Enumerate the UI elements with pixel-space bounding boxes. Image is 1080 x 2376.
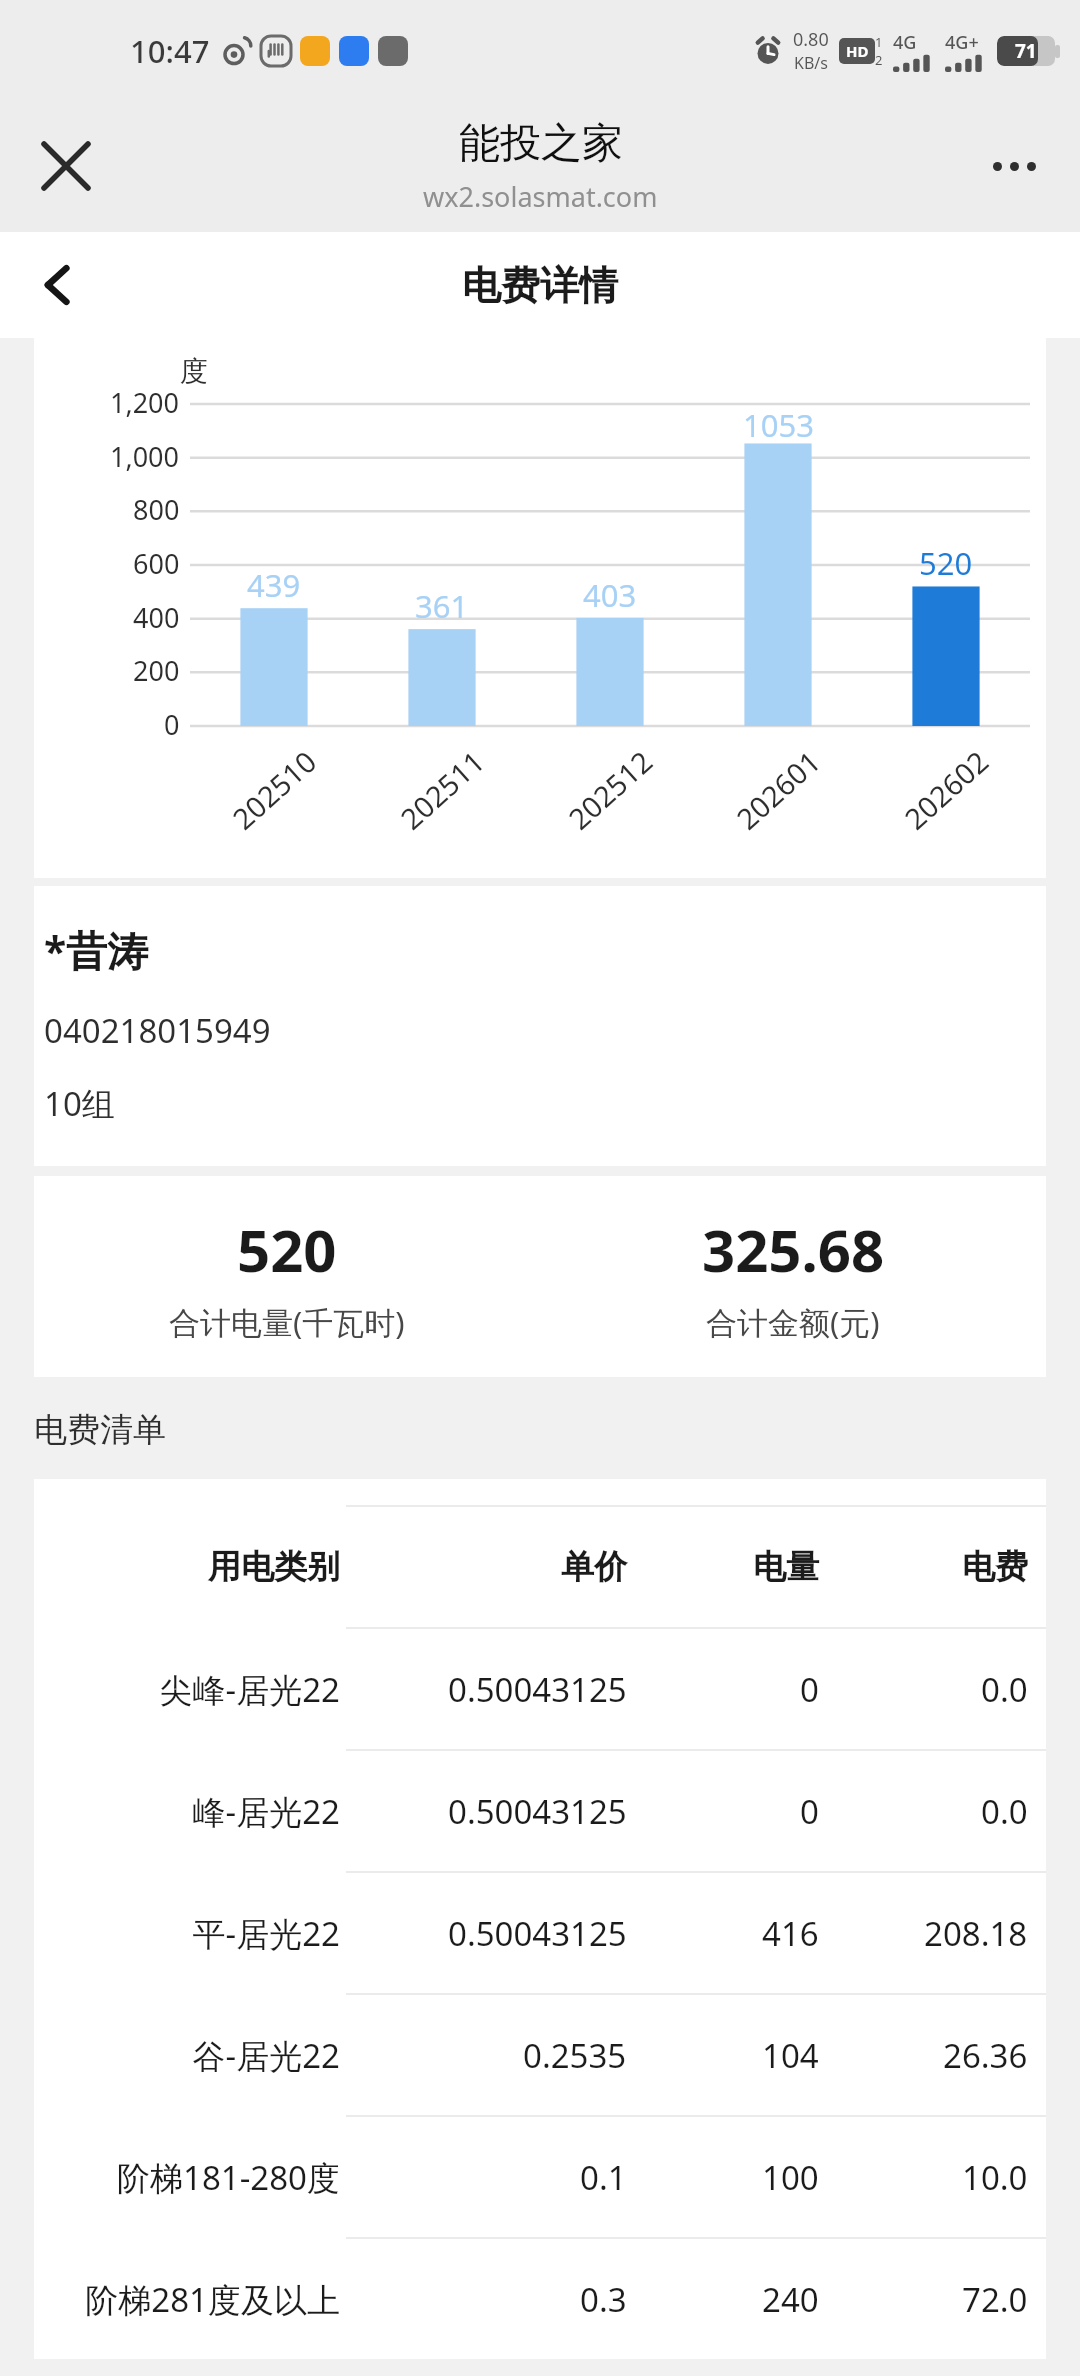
staticText: 71 [1015, 38, 1037, 64]
staticText: 208.18 [924, 1911, 1028, 1956]
staticText: 平-居光22 [192, 1911, 340, 1956]
staticText: 104 [762, 2033, 819, 2078]
staticText: 26.36 [943, 2033, 1028, 2078]
staticText: 361 [415, 585, 469, 627]
staticText: KB/s [794, 52, 828, 74]
button[interactable]: 阶梯181-280度 [34, 2117, 1046, 2237]
staticText: 电费详情 [462, 261, 618, 310]
staticText: 439 [247, 564, 301, 606]
staticText: 100 [762, 2155, 819, 2200]
button[interactable]: 峰-居光22 [34, 1751, 1046, 1871]
staticText: 阶梯281度及以上 [85, 2277, 340, 2322]
staticText: 0 [164, 706, 180, 743]
staticText: 能投之家 [459, 118, 623, 170]
staticText: 200 [133, 652, 180, 689]
staticText: 0.1 [580, 2155, 627, 2200]
staticText: 0.3 [580, 2277, 627, 2322]
button[interactable]: 用电类别 [34, 1507, 1046, 1627]
staticText: 520 [237, 1210, 337, 1289]
staticText: 1,000 [110, 438, 180, 475]
button[interactable]: More options [968, 120, 1060, 212]
staticText: 202601 [728, 742, 828, 837]
staticText: 202512 [560, 742, 660, 837]
staticText: 单价 [561, 1546, 627, 1588]
staticText: 040218015949 [44, 1008, 271, 1053]
staticText: 10.0 [962, 2155, 1028, 2200]
button[interactable]: 尖峰-居光22 [34, 1629, 1046, 1749]
staticText: 403 [583, 574, 637, 616]
staticText: 2 [875, 51, 883, 69]
staticText: 度 [180, 354, 208, 389]
staticText: 0.50043125 [448, 1667, 627, 1712]
staticText: 峰-居光22 [192, 1789, 340, 1834]
staticText: 1,200 [110, 384, 180, 421]
staticText: 0.2535 [523, 2033, 627, 2078]
staticText: 202602 [896, 742, 996, 837]
staticText: 电量 [753, 1546, 819, 1588]
staticText: 325.68 [702, 1210, 885, 1289]
button[interactable]: 谷-居光22 [34, 1995, 1046, 2115]
button[interactable]: 阶梯281度及以上 [34, 2239, 1046, 2359]
staticText: 800 [133, 491, 180, 528]
staticText: 0.80 [793, 27, 829, 52]
staticText: 4G+ [945, 30, 979, 55]
staticText: 0.0 [981, 1789, 1028, 1834]
staticText: 1 [875, 33, 883, 51]
staticText: 0.50043125 [448, 1789, 627, 1834]
staticText: 10:47 [130, 30, 210, 72]
staticText: HD [846, 41, 869, 61]
staticText: 合计金额(元) [706, 1301, 880, 1343]
staticText: 0.0 [981, 1667, 1028, 1712]
staticText: 尖峰-居光22 [159, 1667, 340, 1712]
staticText: 416 [762, 1911, 819, 1956]
staticText: 0.50043125 [448, 1911, 627, 1956]
staticText: 4G [893, 30, 917, 55]
button[interactable]: Back [16, 243, 100, 327]
staticText: 400 [133, 599, 180, 636]
button[interactable]: Close [20, 120, 112, 212]
staticText: 10组 [44, 1081, 115, 1126]
staticText: 1053 [743, 404, 814, 441]
staticText: 600 [133, 545, 180, 582]
staticText: 电费 [962, 1546, 1028, 1588]
staticText: 202511 [392, 742, 492, 837]
staticText: wx2.solasmat.com [423, 178, 658, 215]
staticText: 谷-居光22 [192, 2033, 340, 2078]
staticText: 202510 [224, 742, 324, 837]
staticText: 0 [800, 1789, 819, 1834]
staticText: 合计电量(千瓦时) [169, 1301, 405, 1343]
staticText: 0 [800, 1667, 819, 1712]
staticText: 用电类别 [208, 1546, 340, 1588]
staticText: 72.0 [962, 2277, 1028, 2322]
button[interactable]: 平-居光22 [34, 1873, 1046, 1993]
staticText: 520 [919, 542, 973, 584]
staticText: 阶梯181-280度 [117, 2155, 340, 2200]
staticText: *昔涛 [44, 922, 149, 978]
staticText: 240 [762, 2277, 819, 2322]
staticText: 电费清单 [34, 1409, 166, 1451]
